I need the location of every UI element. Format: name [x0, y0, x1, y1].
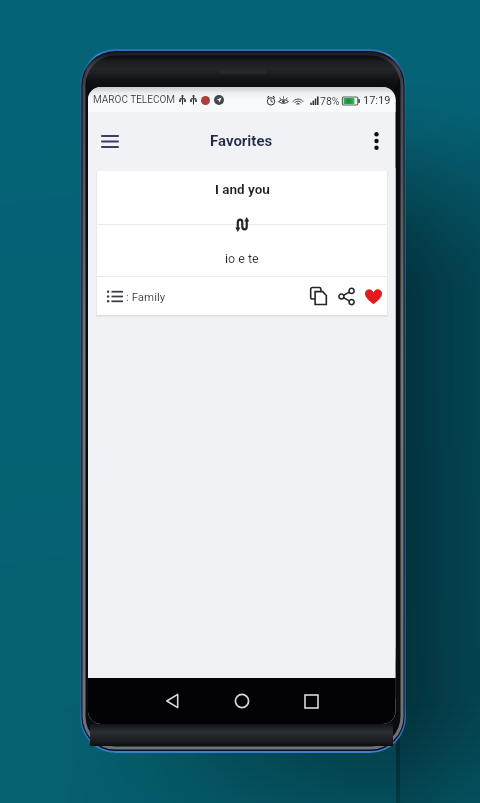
staticText: 17:19	[363, 94, 391, 107]
button[interactable]: Swap languages	[227, 213, 257, 236]
button[interactable]: Open navigation menu	[92, 123, 128, 159]
button[interactable]: Back	[157, 686, 187, 716]
button[interactable]: Share	[333, 283, 359, 309]
button[interactable]: Recent apps	[296, 686, 326, 716]
staticText: 78%	[320, 95, 340, 107]
staticText: : Family	[126, 290, 166, 303]
staticText: MAROC TELECOM	[93, 94, 176, 106]
button[interactable]: I and you	[96, 173, 388, 205]
button[interactable]: io e te	[96, 242, 388, 274]
button[interactable]: More options	[358, 123, 394, 159]
button[interactable]: Favorite	[360, 283, 386, 309]
button[interactable]: : Family	[107, 290, 166, 303]
staticText: Favorites	[210, 132, 273, 150]
staticText: I and you	[215, 181, 270, 197]
button[interactable]: Home	[227, 686, 257, 716]
staticText: io e te	[225, 251, 259, 266]
button[interactable]: Copy	[305, 283, 331, 309]
